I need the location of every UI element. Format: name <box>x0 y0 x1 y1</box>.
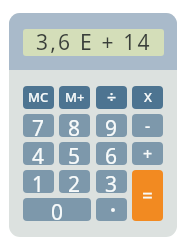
button[interactable]: 8 <box>59 114 90 137</box>
staticText: 3,6 E + 14 <box>36 29 152 55</box>
staticText: 2 <box>68 170 81 193</box>
staticText: - <box>145 115 151 137</box>
button[interactable]: 3,6 E + 14 <box>23 29 164 56</box>
staticText: M+ <box>65 88 85 106</box>
button[interactable]: 4 <box>23 142 54 165</box>
button[interactable]: 1 <box>23 170 54 193</box>
staticText: 1 <box>32 170 45 193</box>
staticText: 9 <box>105 114 118 137</box>
button[interactable]: M+ <box>59 86 90 109</box>
button[interactable]: 5 <box>59 142 90 165</box>
staticText: 0 <box>51 198 64 221</box>
staticText: MC <box>28 88 49 106</box>
button[interactable]: = <box>132 170 163 221</box>
staticText: ÷ <box>107 86 117 108</box>
staticText: = <box>142 183 153 209</box>
button[interactable]: - <box>132 114 163 137</box>
button[interactable]: + <box>132 142 163 165</box>
staticText: X <box>144 88 152 106</box>
staticText: 6 <box>105 142 118 165</box>
button[interactable]: X <box>132 86 163 109</box>
button[interactable]: 2 <box>59 170 90 193</box>
button[interactable]: 7 <box>23 114 54 137</box>
button[interactable]: 6 <box>96 142 127 165</box>
button[interactable]: MC <box>23 86 54 109</box>
staticText: 3 <box>105 170 118 193</box>
staticText: 5 <box>68 142 81 165</box>
staticText: + <box>143 143 153 165</box>
staticText: 4 <box>32 142 45 165</box>
button[interactable]: 3 <box>96 170 127 193</box>
button[interactable]: 0 <box>23 198 91 221</box>
staticText: 8 <box>68 114 81 137</box>
staticText: 7 <box>32 114 45 137</box>
button[interactable] <box>96 198 127 221</box>
button[interactable]: ÷ <box>96 86 127 109</box>
button[interactable]: 9 <box>96 114 127 137</box>
